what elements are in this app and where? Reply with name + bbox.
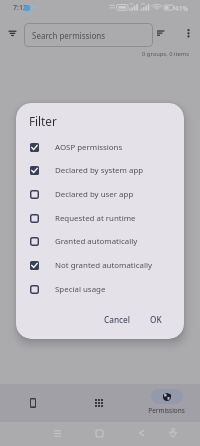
staticText: 41% — [175, 4, 188, 13]
button[interactable]: Special usage — [16, 278, 184, 301]
button[interactable]: Declared by system app — [16, 159, 184, 182]
staticText: Special usage — [55, 284, 106, 295]
staticText: Permissions — [148, 406, 185, 415]
button[interactable]: Home — [91, 425, 107, 441]
button[interactable]: More options — [179, 24, 197, 42]
staticText: AOSP permissions — [55, 142, 123, 153]
button[interactable]: All apps — [66, 384, 133, 422]
staticText: 7:12 — [13, 3, 27, 13]
staticText: OK — [150, 314, 162, 325]
button[interactable]: Granted automatically — [16, 230, 184, 253]
staticText: Declared by system app — [55, 165, 144, 176]
button[interactable]: Search permissions — [24, 23, 153, 47]
button[interactable]: Not granted automatically — [16, 254, 184, 277]
staticText: Filter — [29, 113, 57, 129]
staticText: Not granted automatically — [55, 260, 153, 271]
staticText: Granted automatically — [55, 236, 138, 247]
button[interactable]: Hide keyboard — [165, 425, 181, 441]
staticText: Declared by user app — [55, 189, 134, 200]
button[interactable]: Menu — [49, 425, 65, 441]
button[interactable]: Declared by user app — [16, 183, 184, 206]
button[interactable]: OK — [144, 310, 168, 328]
staticText: Requested at runtime — [55, 213, 136, 224]
button[interactable]: Sort — [152, 24, 170, 42]
staticText: Cancel — [104, 314, 130, 325]
button[interactable]: Cancel — [98, 310, 136, 328]
button[interactable]: AOSP permissions — [16, 136, 184, 159]
button[interactable]: Device — [0, 384, 66, 422]
staticText: 0 groups, 0 items — [142, 50, 190, 58]
button[interactable]: Filter — [3, 24, 21, 42]
button[interactable]: Requested at runtime — [16, 207, 184, 230]
staticText: Search permissions — [32, 30, 106, 41]
button[interactable]: Back — [133, 425, 149, 441]
button[interactable]: Permissions — [133, 384, 200, 422]
